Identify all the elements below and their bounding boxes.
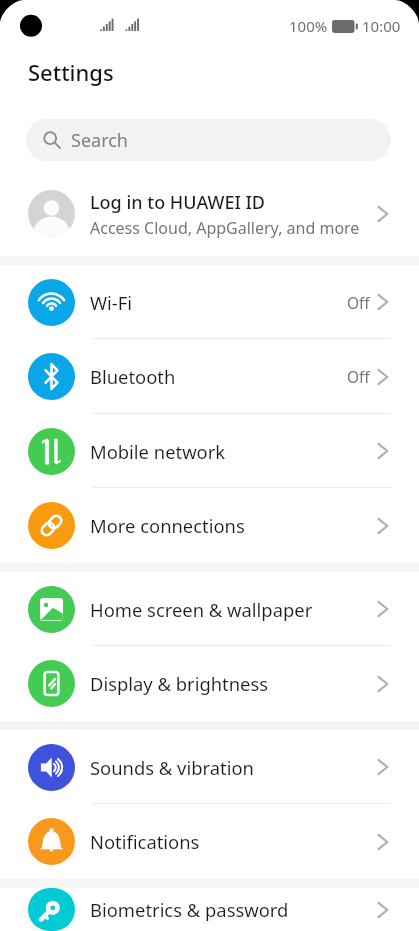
button[interactable]: Biometrics & password [0, 888, 419, 931]
staticText: More connections [90, 513, 377, 538]
staticText: Off [347, 292, 370, 313]
staticText: Home screen & wallpaper [90, 597, 377, 622]
button[interactable]: Display & brightness [0, 646, 419, 721]
staticText: 100% [289, 16, 328, 36]
staticText: Log in to HUAWEI ID [90, 190, 266, 215]
button[interactable]: Mobile network [0, 414, 419, 488]
button[interactable]: Wi-Fi [0, 265, 419, 339]
button[interactable]: Bluetooth [0, 339, 419, 414]
staticText: Biometrics & password [90, 897, 377, 922]
button[interactable]: Home screen & wallpaper [0, 572, 419, 646]
button[interactable]: Sounds & vibration [0, 730, 419, 804]
staticText: Sounds & vibration [90, 755, 377, 780]
staticText: Display & brightness [90, 671, 377, 696]
staticText: Bluetooth [90, 364, 347, 389]
staticText: Settings [28, 57, 114, 87]
staticText: Access Cloud, AppGallery, and more [90, 217, 360, 239]
button[interactable]: Notifications [0, 804, 419, 879]
staticText: 10:00 [362, 16, 401, 36]
staticText: Notifications [90, 829, 377, 854]
button[interactable]: More connections [0, 488, 419, 563]
staticText: Off [347, 366, 370, 387]
button[interactable]: Log in to HUAWEI ID [0, 167, 419, 256]
staticText: Wi-Fi [90, 290, 347, 315]
staticText: Search [71, 128, 128, 153]
button[interactable]: Search [26, 119, 391, 161]
staticText: Mobile network [90, 439, 377, 464]
